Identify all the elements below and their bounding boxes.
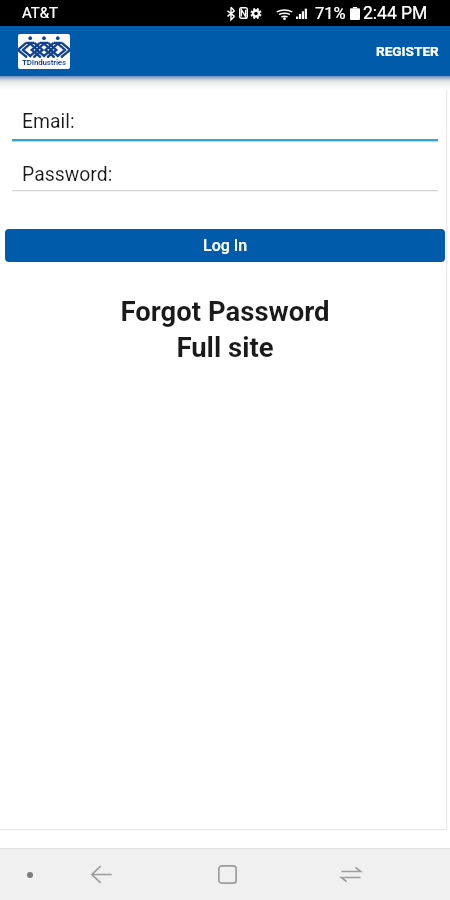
button[interactable]: Menu bbox=[4, 849, 56, 900]
staticText: TDIndustries bbox=[22, 58, 66, 67]
staticText: Password: bbox=[22, 163, 113, 186]
staticText: REGISTER bbox=[376, 43, 439, 59]
button[interactable]: Home bbox=[201, 849, 253, 900]
staticText: 71% bbox=[315, 4, 346, 23]
button[interactable]: Log In bbox=[5, 229, 445, 262]
button[interactable]: Recent apps bbox=[325, 849, 377, 900]
button[interactable]: Back bbox=[75, 849, 127, 900]
button[interactable]: Forgot Password bbox=[0, 295, 450, 327]
button[interactable]: REGISTER bbox=[365, 30, 450, 72]
staticText: 2:44 PM bbox=[363, 3, 428, 24]
staticText: AT&T bbox=[22, 4, 59, 22]
button[interactable]: Full site bbox=[0, 331, 450, 363]
staticText: Log In bbox=[203, 236, 248, 255]
staticText: Email: bbox=[22, 110, 75, 133]
button[interactable]: TDIndustries home bbox=[18, 34, 70, 69]
